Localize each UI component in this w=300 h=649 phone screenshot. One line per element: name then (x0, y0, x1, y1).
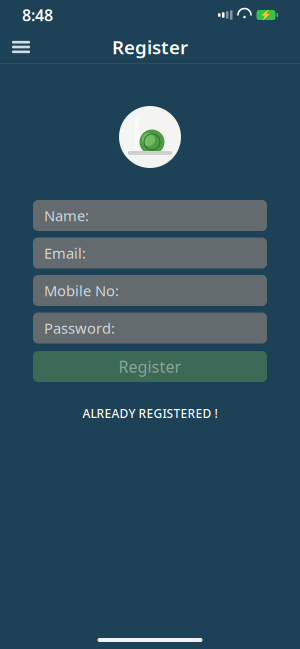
staticText: Name: (44, 206, 89, 225)
button[interactable]: Menu (0, 31, 42, 63)
staticText: Mobile No: (44, 281, 119, 300)
staticText: Password: (44, 318, 115, 338)
button[interactable]: Mobile No: (33, 275, 267, 306)
staticText: Email: (44, 243, 86, 263)
staticText: Register (118, 356, 181, 377)
button[interactable]: Name: (33, 200, 267, 231)
staticText: ALREADY REGISTERED ! (82, 405, 217, 421)
button[interactable]: Email: (33, 237, 267, 268)
staticText: 8:48 (22, 4, 53, 26)
staticText: Register (112, 35, 188, 59)
button[interactable]: ALREADY REGISTERED ! (33, 397, 267, 429)
button[interactable]: Password: (33, 312, 267, 343)
button[interactable]: Register (33, 351, 267, 382)
staticText: ⚡ (260, 10, 272, 20)
